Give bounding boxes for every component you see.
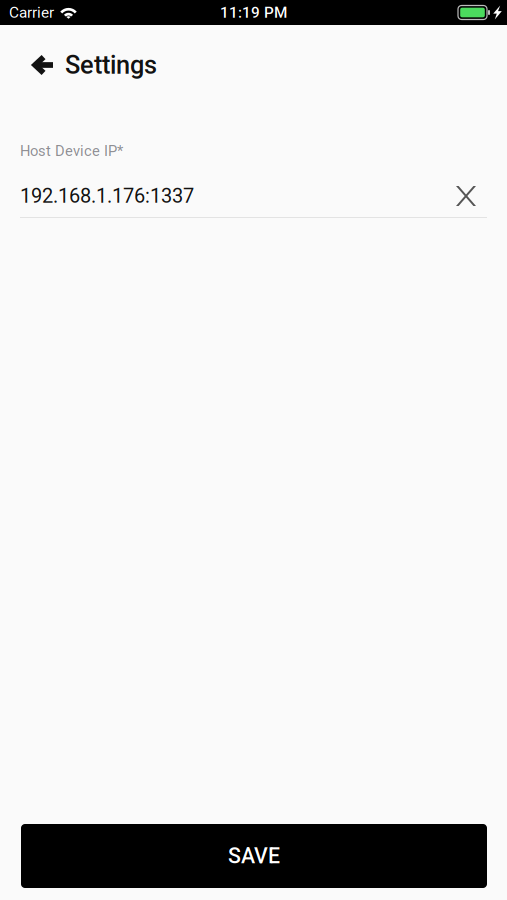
staticText: 11:19 PM — [220, 3, 287, 21]
staticText: Settings — [65, 50, 157, 80]
button[interactable]: SAVE — [21, 824, 487, 888]
staticText: Host Device IP* — [20, 142, 123, 160]
staticText: Carrier — [9, 3, 54, 21]
button[interactable]: Settings — [0, 43, 173, 87]
staticText: SAVE — [228, 843, 280, 868]
staticText: 192.168.1.176:1337 — [20, 184, 194, 208]
button[interactable]: Clear text — [440, 181, 487, 211]
